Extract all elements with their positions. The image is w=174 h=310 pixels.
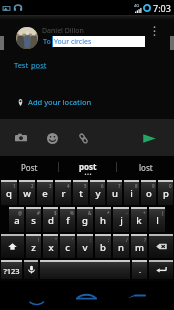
button[interactable]: k: [131, 207, 147, 232]
button[interactable]: t: [73, 180, 88, 205]
button[interactable]: p: [158, 180, 173, 205]
staticText: v: [82, 241, 88, 254]
staticText: ": [55, 237, 57, 243]
staticText: x: [48, 241, 54, 254]
staticText: h: [100, 214, 106, 227]
button[interactable]: f: [60, 207, 75, 232]
button[interactable]: h: [95, 207, 111, 232]
button[interactable]: a: [9, 207, 24, 232]
button[interactable]: w: [19, 180, 35, 205]
button[interactable]: ?123: [1, 260, 22, 279]
staticText: (: [162, 210, 164, 216]
staticText: b: [100, 241, 106, 254]
button[interactable]: post: [59, 156, 116, 178]
staticText: y: [95, 187, 101, 200]
staticText: +: [143, 210, 146, 216]
button[interactable]: .: [132, 260, 147, 279]
staticText: 4: [67, 183, 70, 189]
staticText: c: [65, 241, 70, 254]
button[interactable]: n: [113, 234, 129, 258]
button[interactable]: g: [77, 207, 93, 232]
staticText: ?123: [3, 266, 20, 276]
button[interactable]: Emoji: [40, 126, 64, 150]
staticText: t: [79, 187, 83, 200]
button[interactable]: Backspace: [149, 234, 173, 258]
staticText: f: [66, 214, 70, 227]
staticText: ;: [108, 237, 110, 243]
staticText: u: [112, 187, 118, 200]
button[interactable]: Back: [24, 294, 50, 306]
staticText: 9: [152, 183, 155, 189]
staticText: 5: [84, 183, 87, 189]
staticText: Add your location: [28, 97, 92, 107]
staticText: Daniel Dillon: [42, 26, 84, 36]
button[interactable]: lost: [117, 156, 174, 178]
button[interactable]: Add your location: [18, 97, 92, 107]
staticText: 7:03: [153, 2, 171, 14]
staticText: 4G: [134, 3, 140, 8]
staticText: j: [120, 214, 123, 227]
staticText: 0: [169, 183, 172, 189]
button[interactable]: Camera: [9, 126, 33, 150]
button[interactable]: Post: [0, 156, 58, 178]
staticText: %: [70, 210, 74, 216]
staticText: 2: [31, 183, 34, 189]
staticText: w: [23, 187, 31, 200]
staticText: r: [61, 187, 66, 200]
button[interactable]: s: [26, 207, 41, 232]
button[interactable]: y: [90, 180, 105, 205]
button[interactable]: q: [1, 180, 17, 205]
button[interactable]: c: [60, 234, 75, 258]
button[interactable]: u: [107, 180, 122, 205]
button[interactable]: Attach: [71, 126, 95, 150]
button[interactable]: l: [149, 207, 165, 232]
button[interactable]: d: [43, 207, 58, 232]
staticText: n: [118, 241, 124, 254]
staticText: post: [79, 161, 97, 172]
staticText: post: [31, 60, 47, 70]
button[interactable]: x: [43, 234, 58, 258]
staticText: l: [156, 214, 159, 227]
staticText: .: [139, 266, 141, 276]
staticText: -: [126, 210, 128, 216]
staticText: 1: [13, 183, 16, 189]
staticText: p: [163, 187, 169, 200]
staticText: 6: [101, 183, 104, 189]
button[interactable]: More options: [148, 26, 160, 44]
staticText: *: [107, 210, 110, 216]
button[interactable]: v: [77, 234, 93, 258]
staticText: Test: [14, 60, 31, 70]
button[interactable]: j: [113, 207, 129, 232]
staticText: Your circles: [54, 37, 92, 47]
button[interactable]: r: [55, 180, 71, 205]
button[interactable]: Home: [72, 290, 101, 304]
staticText: !: [38, 237, 40, 243]
button[interactable]: Voice input: [24, 260, 38, 279]
staticText: &: [88, 210, 92, 216]
staticText: i: [130, 187, 133, 200]
staticText: To: [43, 37, 51, 47]
button[interactable]: e: [37, 180, 53, 205]
button[interactable]: [40, 260, 130, 279]
staticText: 7: [118, 183, 121, 189]
staticText: #: [37, 210, 40, 216]
button[interactable]: m: [131, 234, 147, 258]
staticText: ': [72, 237, 74, 243]
staticText: Post: [21, 162, 38, 173]
button[interactable]: Shift: [1, 234, 24, 258]
staticText: o: [146, 187, 152, 200]
button[interactable]: b: [95, 234, 111, 258]
staticText: 8: [135, 183, 138, 189]
button[interactable]: o: [141, 180, 156, 205]
button[interactable]: z: [26, 234, 41, 258]
button[interactable]: Enter: [149, 260, 173, 279]
button[interactable]: Send: [136, 125, 162, 151]
staticText: a: [14, 214, 20, 227]
staticText: q: [6, 187, 12, 200]
staticText: d: [48, 214, 54, 227]
staticText: lost: [139, 162, 153, 173]
button[interactable]: i: [124, 180, 139, 205]
staticText: ?: [144, 237, 146, 243]
button[interactable]: Recents: [120, 290, 150, 304]
staticText: z: [31, 241, 36, 254]
